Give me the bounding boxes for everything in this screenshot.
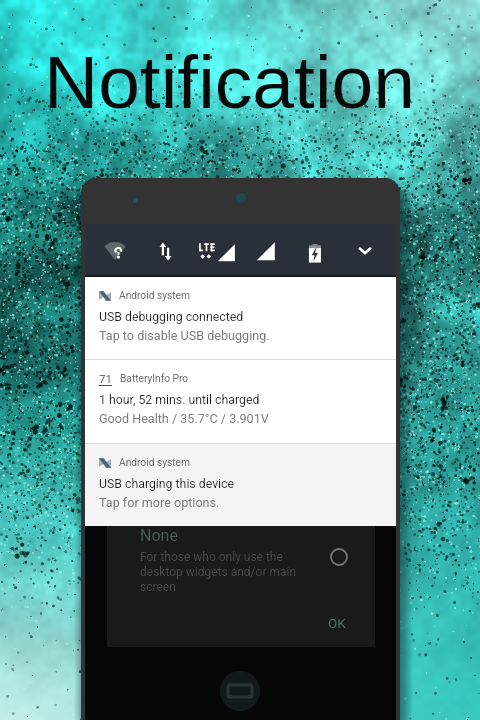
button[interactable]: Android system: [85, 444, 396, 526]
staticText: USB charging this device: [99, 477, 235, 491]
staticText: BatteryInfo Pro: [120, 373, 189, 385]
staticText: None: [140, 526, 178, 545]
button[interactable]: Mobile data activity: [159, 242, 172, 261]
staticText: Tap to disable USB debugging.: [99, 328, 270, 343]
staticText: Tap for more options.: [99, 495, 220, 510]
staticText: Android system: [119, 457, 190, 469]
button[interactable]: 71: [85, 360, 396, 443]
staticText: Good Health / 35.7°C / 3.901V: [99, 411, 269, 426]
staticText: USB debugging connected: [99, 310, 244, 324]
button[interactable]: OK: [320, 609, 354, 637]
button[interactable]: Collapse: [352, 241, 378, 261]
button[interactable]: Wi-Fi not connected: [104, 240, 128, 261]
button[interactable]: Select None: [328, 546, 350, 568]
button[interactable]: Android system: [85, 277, 396, 359]
staticText: 1 hour, 52 mins. until charged: [99, 393, 260, 407]
staticText: For those who only use the desktop widge…: [140, 550, 297, 594]
staticText: Android system: [119, 290, 190, 302]
staticText: OK: [328, 615, 346, 631]
staticText: 71: [99, 372, 112, 384]
button[interactable]: None: [140, 526, 297, 594]
staticText: Notification: [44, 40, 416, 124]
button[interactable]: Home: [220, 671, 260, 711]
